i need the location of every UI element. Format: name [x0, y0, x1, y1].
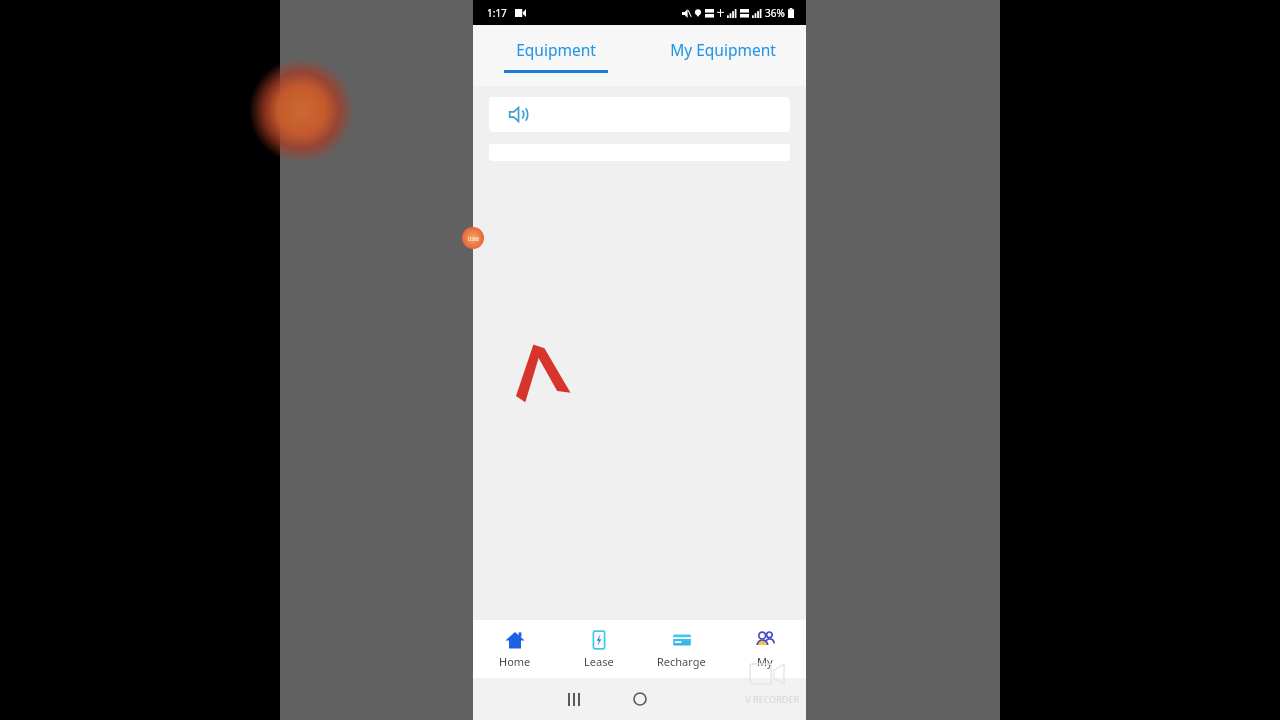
staticText: 36%	[765, 6, 785, 20]
button[interactable]: Home	[633, 692, 647, 706]
button[interactable]: My Equipment	[639, 25, 806, 86]
button[interactable]: My	[723, 620, 806, 678]
button[interactable]: Recent apps	[568, 693, 580, 706]
button[interactable]: Equipment	[473, 25, 639, 86]
staticText: 1:17	[487, 6, 507, 20]
staticText: V RECORDER	[745, 693, 800, 705]
other: Screen recording	[515, 9, 526, 17]
staticText: Recharge	[657, 654, 706, 669]
other: Announcements	[509, 106, 526, 123]
staticText: 0:06	[468, 235, 479, 242]
button[interactable]: Lease	[557, 620, 640, 678]
staticText: Home	[499, 654, 531, 669]
staticText: Equipment	[516, 39, 596, 60]
staticText: Lease	[584, 654, 614, 669]
button[interactable]: Home	[473, 620, 557, 678]
button[interactable]: Recharge	[640, 620, 723, 678]
button[interactable]: Announcements	[489, 97, 790, 132]
staticText: My Equipment	[670, 39, 776, 60]
staticText: My	[757, 654, 773, 669]
